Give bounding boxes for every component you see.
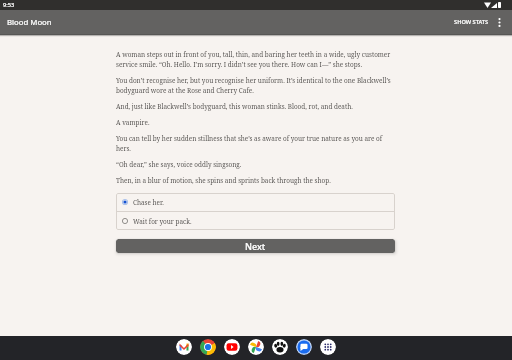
button[interactable]: Next [116, 239, 395, 253]
staticText: 9:53 [3, 1, 15, 9]
button[interactable]: Chrome [200, 339, 216, 355]
button[interactable]: More options [489, 12, 510, 32]
button[interactable]: All apps [320, 339, 336, 355]
staticText: “Oh dear,” she says, voice oddly singson… [116, 159, 395, 169]
button[interactable]: Gmail [176, 339, 192, 355]
staticText: Then, in a blur of motion, she spins and… [116, 175, 395, 185]
staticText: A vampire. [116, 117, 395, 127]
button[interactable]: YouTube [224, 339, 240, 355]
button[interactable]: Wait for your pack. [116, 212, 395, 230]
staticText: Blood Moon [7, 17, 52, 28]
button[interactable]: Photos [248, 339, 264, 355]
staticText: You can tell by her sudden stillness tha… [116, 133, 395, 153]
button[interactable]: Messages [296, 339, 312, 355]
staticText: A woman steps out in front of you, tall,… [116, 49, 395, 69]
button[interactable]: SHOW STATS [449, 13, 489, 31]
staticText: And, just like Blackwell’s bodyguard, th… [116, 101, 395, 111]
staticText: SHOW STATS [454, 18, 489, 26]
staticText: Next [245, 240, 266, 252]
staticText: You don’t recognise her, but you recogni… [116, 75, 395, 95]
staticText: Wait for your pack. [133, 217, 192, 226]
button[interactable]: Chase her. [116, 193, 395, 211]
staticText: Chase her. [133, 198, 164, 207]
button[interactable]: Pet tracker [272, 339, 288, 355]
